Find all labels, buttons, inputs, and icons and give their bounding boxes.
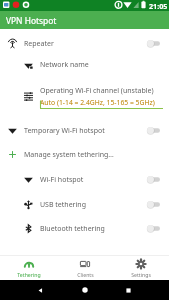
button[interactable]: Tethering xyxy=(0,256,57,280)
button[interactable]: USB tethering xyxy=(0,194,169,215)
other: Recents xyxy=(125,287,132,294)
staticText: USB tethering xyxy=(40,200,86,210)
staticText: Temporary Wi-Fi hotspot xyxy=(24,126,105,136)
staticText: Auto (1-14 = 2.4GHz, 15-165 = 5GHz) xyxy=(40,98,155,107)
staticText: 21:05 xyxy=(149,1,168,11)
staticText: Repeater xyxy=(24,39,54,49)
staticText: Operating Wi-Fi channel (unstable) xyxy=(40,86,154,96)
button[interactable]: Wi-Fi hotspot xyxy=(0,169,169,190)
staticText: Wi-Fi hotspot xyxy=(40,175,84,185)
other: Home xyxy=(81,286,89,294)
button[interactable]: Clients xyxy=(57,256,113,280)
button[interactable]: Settings xyxy=(113,256,169,280)
button[interactable]: Bluetooth tethering xyxy=(0,218,169,239)
staticText: Settings xyxy=(131,271,151,278)
other: Back xyxy=(37,287,44,294)
staticText: Clients xyxy=(77,271,94,278)
staticText: VPN Hotspot xyxy=(6,15,57,26)
staticText: Bluetooth tethering xyxy=(40,224,105,234)
staticText: Tethering xyxy=(17,271,41,278)
staticText: Manage system tethering… xyxy=(24,150,114,160)
staticText: Network name xyxy=(40,60,89,70)
button[interactable]: Manage system tethering… xyxy=(0,144,169,165)
button[interactable]: Repeater xyxy=(0,33,169,54)
button[interactable]: Temporary Wi-Fi hotspot xyxy=(0,120,169,141)
button[interactable]: Network name xyxy=(0,55,169,75)
button[interactable]: Operating Wi-Fi channel (unstable) xyxy=(0,82,169,111)
